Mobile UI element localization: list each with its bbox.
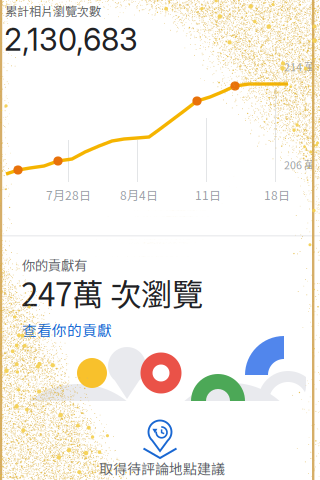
staticText: 累計相片瀏覽次數	[5, 2, 101, 19]
staticText: 8月4日	[120, 186, 158, 203]
button[interactable]: 取得待評論地點建議	[0, 0, 320, 480]
staticText: 取得待評論地點建議	[99, 458, 225, 478]
staticText: 214 萬	[284, 59, 315, 74]
staticText: 247萬 次瀏覽	[21, 270, 203, 315]
staticText: 2,130,683	[4, 21, 138, 58]
button[interactable]: 查看你的貢獻	[22, 319, 112, 340]
staticText: 18日	[264, 186, 290, 203]
staticText: 7月28日	[46, 186, 91, 203]
staticText: 11日	[195, 186, 221, 203]
staticText: 206 萬	[284, 157, 315, 172]
staticText: 查看你的貢獻	[22, 319, 112, 340]
staticText: 你的貢獻有	[22, 255, 87, 274]
